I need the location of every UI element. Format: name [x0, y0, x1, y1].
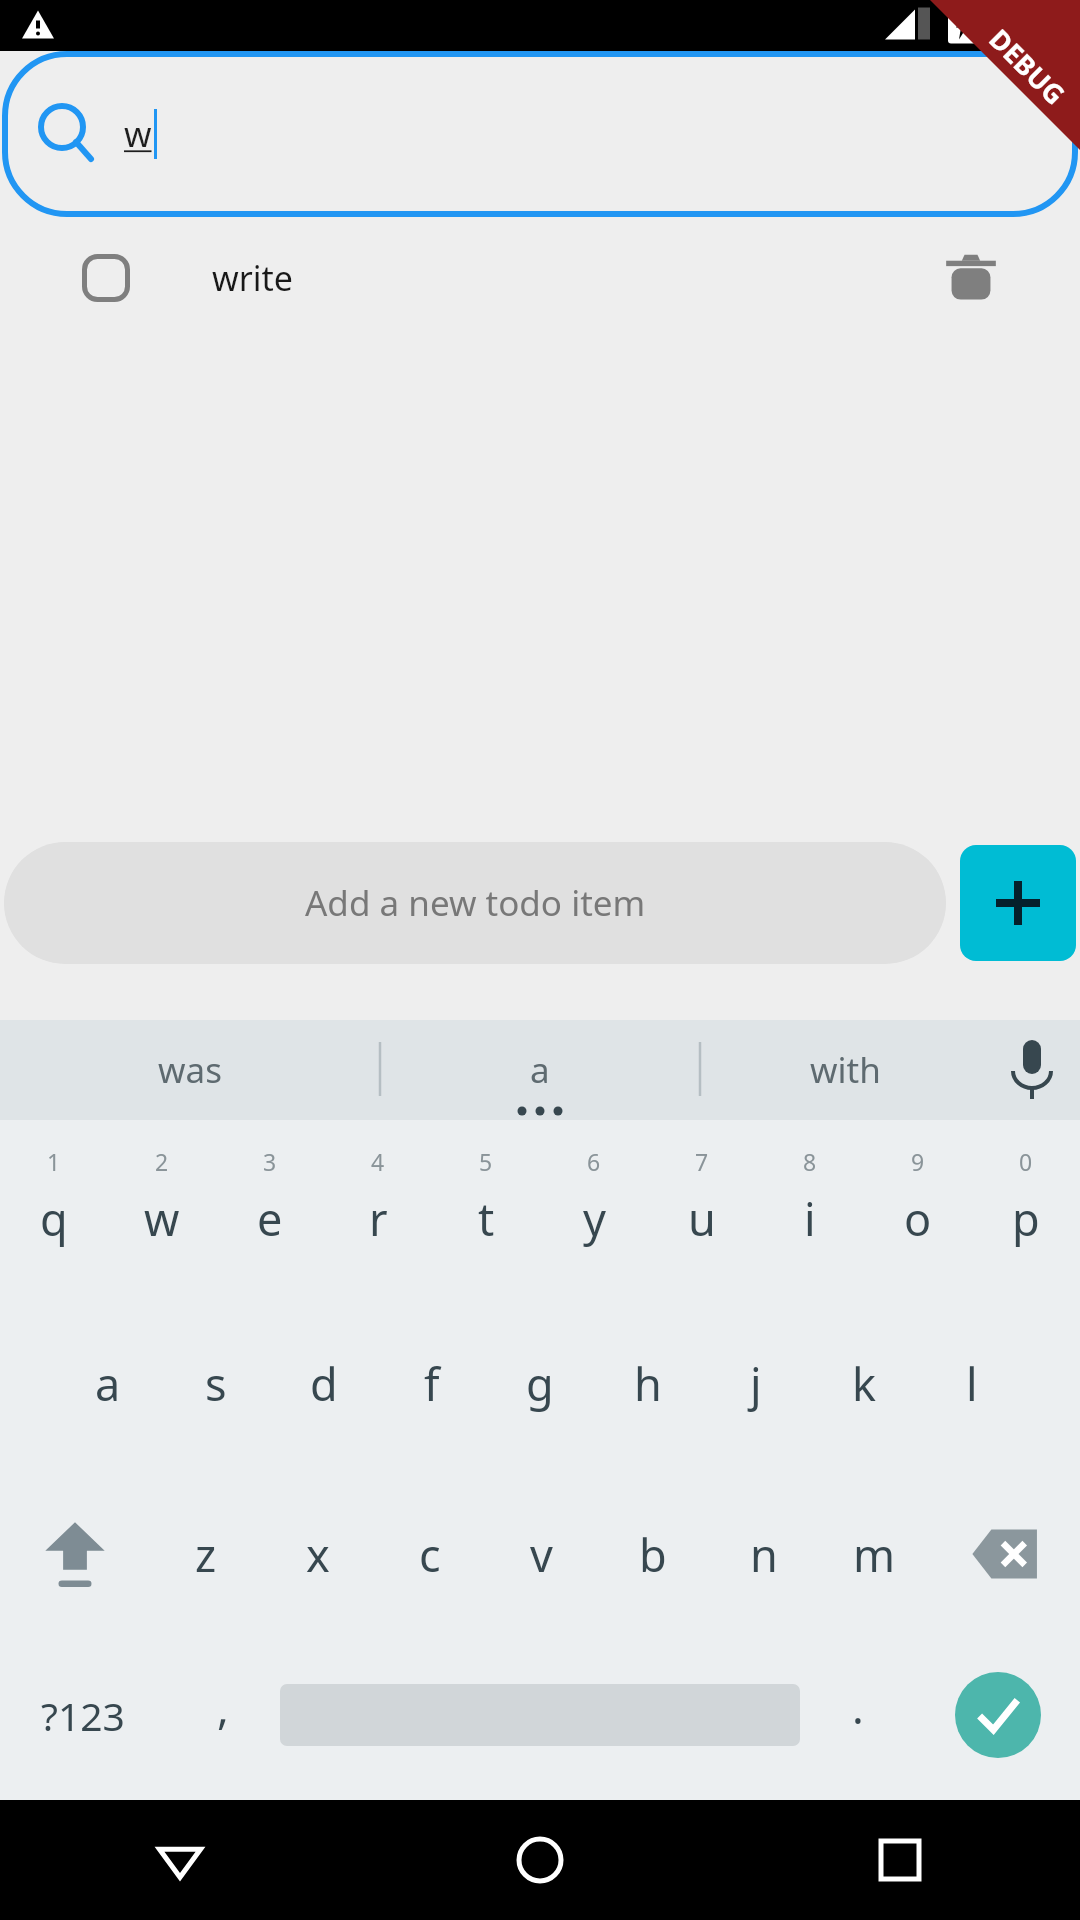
staticText: DEBUG: [981, 20, 1073, 112]
staticText: 4: [371, 1146, 385, 1177]
button[interactable]: Delete todo: [944, 251, 998, 305]
staticText: w: [144, 1188, 180, 1249]
button[interactable]: 3: [216, 1132, 324, 1282]
button[interactable]: .: [800, 1650, 915, 1780]
staticText: u: [688, 1188, 716, 1249]
staticText: w: [124, 110, 152, 158]
button[interactable]: s: [162, 1328, 270, 1438]
button[interactable]: b: [597, 1494, 708, 1614]
button[interactable]: Mark todo complete: [82, 254, 130, 302]
button[interactable]: n: [708, 1494, 819, 1614]
staticText: f: [424, 1353, 440, 1414]
button[interactable]: 0: [972, 1132, 1080, 1282]
button[interactable]: Add a new todo item: [4, 842, 946, 964]
button[interactable]: g: [486, 1328, 594, 1438]
staticText: 3: [263, 1146, 277, 1177]
button[interactable]: 7: [648, 1132, 756, 1282]
staticText: was: [158, 1046, 222, 1094]
button[interactable]: f: [378, 1328, 486, 1438]
staticText: ?123: [41, 1689, 125, 1742]
staticText: t: [478, 1188, 495, 1249]
staticText: l: [966, 1353, 978, 1414]
button[interactable]: h: [594, 1328, 702, 1438]
staticText: h: [634, 1353, 662, 1414]
staticText: e: [257, 1188, 283, 1249]
staticText: k: [852, 1353, 877, 1414]
staticText: o: [904, 1188, 932, 1249]
staticText: p: [1012, 1188, 1040, 1249]
button[interactable]: 4: [324, 1132, 432, 1282]
button[interactable]: w: [2, 51, 1078, 217]
button[interactable]: Backspace: [930, 1494, 1080, 1614]
button[interactable]: Enter: [915, 1650, 1080, 1780]
staticText: .: [852, 1677, 864, 1737]
button[interactable]: a: [380, 1020, 700, 1120]
button[interactable]: Mark todo complete: [0, 217, 1080, 339]
staticText: 0: [1019, 1146, 1033, 1177]
button[interactable]: k: [810, 1328, 918, 1438]
staticText: x: [306, 1524, 330, 1585]
staticText: a: [530, 1046, 550, 1094]
button[interactable]: Add todo item: [960, 845, 1076, 961]
staticText: 8: [803, 1146, 817, 1177]
staticText: s: [205, 1353, 227, 1414]
staticText: z: [195, 1524, 217, 1585]
staticText: m: [853, 1524, 896, 1585]
staticText: a: [95, 1353, 121, 1414]
staticText: with: [810, 1046, 881, 1094]
button[interactable]: Shift: [0, 1494, 150, 1614]
staticText: g: [526, 1353, 554, 1414]
button[interactable]: Back: [0, 1800, 360, 1920]
staticText: write: [212, 255, 293, 301]
staticText: Add a new todo item: [305, 879, 646, 927]
staticText: i: [804, 1188, 816, 1249]
button[interactable]: d: [270, 1328, 378, 1438]
staticText: v: [530, 1524, 553, 1585]
staticText: b: [639, 1524, 667, 1585]
button[interactable]: 1: [0, 1132, 108, 1282]
button[interactable]: 5: [432, 1132, 540, 1282]
button[interactable]: with: [700, 1020, 990, 1120]
button[interactable]: j: [702, 1328, 810, 1438]
button[interactable]: x: [262, 1494, 374, 1614]
button[interactable]: l: [918, 1328, 1026, 1438]
staticText: 2: [155, 1146, 169, 1177]
button[interactable]: 9: [864, 1132, 972, 1282]
button[interactable]: z: [150, 1494, 262, 1614]
staticText: n: [750, 1524, 778, 1585]
staticText: 7: [695, 1146, 709, 1177]
button[interactable]: 6: [540, 1132, 648, 1282]
staticText: r: [369, 1188, 388, 1249]
button[interactable]: ,: [165, 1650, 280, 1780]
button[interactable]: a: [54, 1328, 162, 1438]
staticText: y: [583, 1188, 606, 1249]
staticText: c: [419, 1524, 441, 1585]
button[interactable]: 2: [108, 1132, 216, 1282]
staticText: 6: [587, 1146, 601, 1177]
staticText: d: [310, 1353, 338, 1414]
button[interactable]: c: [374, 1494, 486, 1614]
button[interactable]: 8: [756, 1132, 864, 1282]
staticText: q: [40, 1188, 68, 1249]
button[interactable]: v: [486, 1494, 597, 1614]
button[interactable]: ?123: [0, 1650, 165, 1780]
staticText: 9: [911, 1146, 925, 1177]
staticText: 1: [47, 1146, 61, 1177]
staticText: j: [750, 1353, 762, 1414]
staticText: 11:26: [1007, 9, 1072, 43]
button[interactable]: was: [0, 1020, 380, 1120]
staticText: ,: [217, 1677, 229, 1737]
button[interactable]: Home: [360, 1800, 720, 1920]
button[interactable]: m: [819, 1494, 930, 1614]
button[interactable]: Recents: [720, 1800, 1080, 1920]
staticText: 5: [479, 1146, 493, 1177]
